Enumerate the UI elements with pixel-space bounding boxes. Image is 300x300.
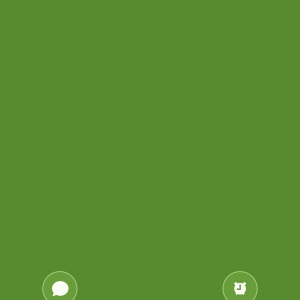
button[interactable]: Messages — [43, 272, 77, 300]
button[interactable]: Alarms — [223, 272, 257, 300]
